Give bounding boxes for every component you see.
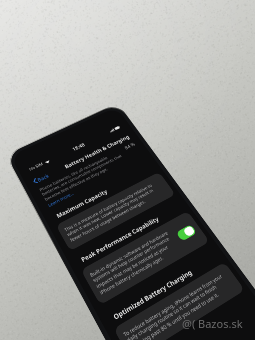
button[interactable]: Back [30, 170, 52, 186]
button[interactable]: Built-in dynamic software and hardware s… [80, 211, 210, 305]
staticText: Built-in dynamic software and hardware s… [88, 228, 183, 297]
staticText: @( Bazos.sk [182, 316, 243, 331]
button[interactable]: To reduce battery aging, iPhone learns f… [113, 262, 245, 340]
staticText: Phone batteries, like all rechargeable b… [38, 147, 130, 203]
staticText: This is a measure of battery capacity re… [63, 178, 168, 244]
button[interactable]: Learn more... [47, 190, 75, 208]
staticText: Peak Performance Capability [79, 215, 161, 264]
button[interactable]: Peak performance capability toggle [176, 224, 197, 242]
button[interactable]: This is a measure of battery capacity re… [56, 172, 176, 251]
staticText: Battery Health & Charging [63, 133, 131, 170]
staticText: Optimized Battery Charging [112, 267, 195, 322]
staticText: Maximum Capacity [55, 187, 109, 220]
staticText: 18:48 [71, 141, 86, 152]
staticText: Back [36, 172, 50, 183]
staticText: 84 % [123, 141, 137, 151]
staticText: No SIM [28, 161, 45, 172]
staticText: To reduce battery aging, iPhone learns f… [122, 269, 237, 340]
